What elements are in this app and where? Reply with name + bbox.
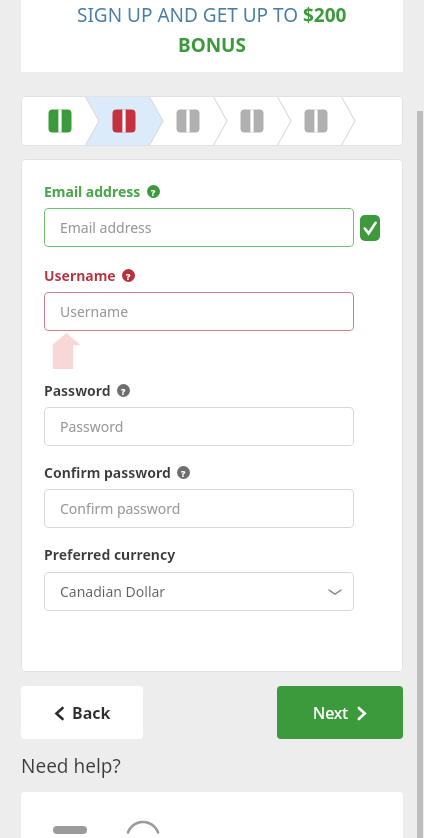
- staticText: Next: [313, 702, 349, 724]
- button[interactable]: Canadian Dollar: [44, 572, 354, 611]
- button[interactable]: Password: [44, 407, 354, 446]
- staticText: Need help?: [21, 753, 121, 779]
- button[interactable]: Help: [147, 185, 160, 198]
- button[interactable]: Back: [21, 686, 143, 739]
- staticText: Username: [60, 302, 129, 321]
- button[interactable]: Help: [122, 269, 135, 282]
- button[interactable]: Email address: [44, 208, 354, 247]
- staticText: Username: [44, 266, 116, 285]
- staticText: Confirm password: [44, 463, 171, 482]
- staticText: BONUS: [178, 32, 246, 58]
- button[interactable]: Help: [117, 384, 130, 397]
- button[interactable]: Step 3: [149, 96, 213, 146]
- button[interactable]: Confirm password: [44, 489, 354, 528]
- button[interactable]: Step 5: [277, 96, 341, 146]
- staticText: ?: [126, 270, 131, 282]
- staticText: Confirm password: [60, 499, 181, 518]
- button[interactable]: Step 4: [213, 96, 277, 146]
- button[interactable]: Next: [277, 686, 403, 739]
- staticText: Email address: [60, 218, 152, 237]
- staticText: ?: [181, 467, 186, 479]
- staticText: Password: [60, 417, 124, 436]
- staticText: Preferred currency: [44, 545, 176, 564]
- button[interactable]: Username: [44, 292, 354, 331]
- staticText: SIGN UP AND GET UP TO: [77, 2, 303, 28]
- button[interactable]: Step 2: [85, 96, 149, 146]
- staticText: Back: [72, 702, 111, 724]
- staticText: Password: [44, 381, 111, 400]
- staticText: $200: [303, 2, 347, 28]
- button[interactable]: Step 1: [21, 96, 85, 146]
- button[interactable]: Help: [177, 466, 190, 479]
- staticText: ?: [151, 186, 156, 198]
- other: Valid: [360, 215, 380, 241]
- staticText: Canadian Dollar: [60, 582, 166, 601]
- staticText: Email address: [44, 182, 141, 201]
- staticText: ?: [121, 385, 126, 397]
